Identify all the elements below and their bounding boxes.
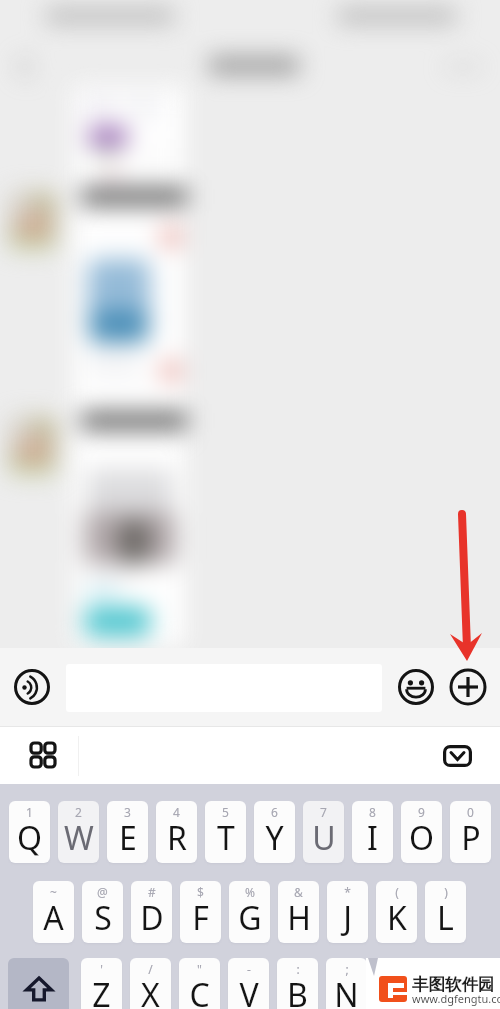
staticText: 0 — [467, 804, 474, 820]
button[interactable]: Shift — [8, 958, 69, 1009]
button[interactable]: 9 — [401, 801, 442, 863]
staticText: P — [461, 816, 481, 860]
staticText: N — [334, 973, 359, 1009]
staticText: W — [64, 816, 94, 860]
staticText: C — [189, 973, 210, 1009]
button[interactable]: 8 — [352, 801, 393, 863]
button[interactable]: % — [229, 881, 270, 943]
staticText: 4 — [173, 804, 180, 820]
staticText: " — [197, 961, 202, 977]
button[interactable]: 5 — [205, 801, 246, 863]
button[interactable]: ~ — [33, 881, 74, 943]
staticText: & — [294, 884, 303, 900]
staticText: # — [148, 884, 156, 900]
staticText: ? — [393, 961, 399, 977]
button[interactable]: 3 — [107, 801, 148, 863]
staticText: D — [140, 896, 164, 940]
button[interactable]: / — [130, 958, 171, 1009]
button[interactable]: - — [228, 958, 269, 1009]
staticText: - — [247, 961, 251, 977]
button[interactable]: Apps — [21, 733, 65, 777]
staticText: $ — [197, 884, 204, 900]
staticText: ( — [395, 884, 399, 900]
staticText: 5 — [222, 804, 229, 820]
staticText: ) — [444, 884, 448, 900]
staticText: V — [239, 973, 259, 1009]
staticText: B — [287, 973, 308, 1009]
staticText: Y — [265, 816, 284, 860]
staticText: F — [192, 896, 209, 940]
button[interactable]: : — [277, 958, 318, 1009]
staticText: ~ — [50, 884, 57, 900]
staticText: ' — [100, 961, 103, 977]
button[interactable]: " — [179, 958, 220, 1009]
button[interactable]: More options — [444, 663, 492, 711]
button[interactable]: $ — [180, 881, 221, 943]
staticText: K — [387, 896, 407, 940]
button[interactable]: ) — [425, 881, 466, 943]
staticText: @ — [97, 884, 108, 900]
staticText: O — [409, 816, 434, 860]
staticText: * — [344, 884, 351, 900]
staticText: 丰图软件园 — [412, 974, 495, 995]
button[interactable]: Hide keyboard — [435, 733, 480, 778]
staticText: : — [296, 961, 300, 977]
staticText: 6 — [271, 804, 278, 820]
staticText: 7 — [320, 804, 327, 820]
staticText: H — [287, 896, 311, 940]
button[interactable]: ' — [81, 958, 122, 1009]
button[interactable]: 1 — [9, 801, 50, 863]
button[interactable]: @ — [82, 881, 123, 943]
staticText: % — [245, 884, 255, 900]
button[interactable]: ? — [375, 958, 416, 1009]
button[interactable]: Voice input — [8, 663, 56, 711]
staticText: A — [43, 896, 64, 940]
staticText: 2 — [75, 804, 82, 820]
button[interactable]: 7 — [303, 801, 344, 863]
staticText: G — [238, 896, 262, 940]
staticText: Z — [92, 973, 111, 1009]
button[interactable]: * — [327, 881, 368, 943]
staticText: www.dgfengtu.com — [412, 991, 500, 1006]
staticText: 9 — [418, 804, 425, 820]
button[interactable]: 2 — [58, 801, 99, 863]
button[interactable]: 6 — [254, 801, 295, 863]
staticText: Q — [17, 816, 42, 860]
staticText: I — [367, 816, 378, 860]
staticText: U — [312, 816, 336, 860]
staticText: / — [148, 961, 153, 977]
staticText: J — [343, 896, 352, 940]
button[interactable]: ; — [326, 958, 367, 1009]
staticText: ; — [345, 961, 349, 977]
button[interactable]: 0 — [450, 801, 491, 863]
button[interactable]: # — [131, 881, 172, 943]
button[interactable]: Emoji — [392, 663, 440, 711]
staticText: T — [217, 816, 235, 860]
staticText: R — [167, 816, 187, 860]
button[interactable]: ( — [376, 881, 417, 943]
staticText: S — [94, 896, 112, 940]
button[interactable]: & — [278, 881, 319, 943]
staticText: X — [141, 973, 160, 1009]
staticText: L — [437, 896, 454, 940]
staticText: 3 — [124, 804, 131, 820]
staticText: 8 — [369, 804, 376, 820]
staticText: M — [381, 973, 411, 1009]
staticText: 1 — [26, 804, 33, 820]
button[interactable]: 4 — [156, 801, 197, 863]
staticText: E — [119, 816, 137, 860]
